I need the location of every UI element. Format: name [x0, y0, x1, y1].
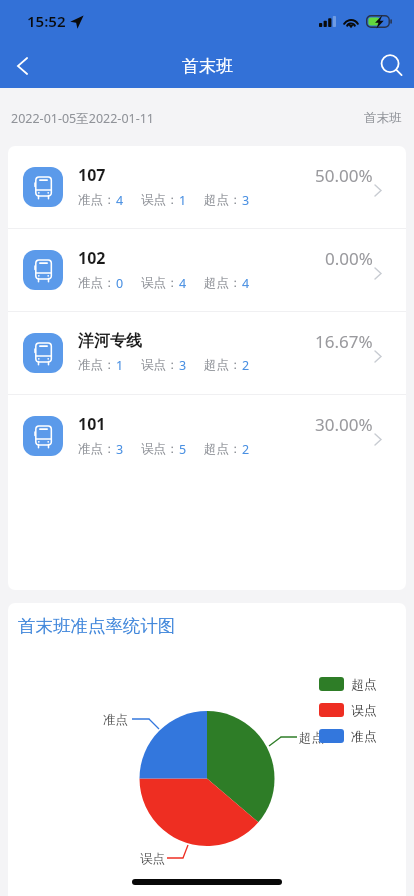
staticText: 4 [242, 275, 250, 292]
staticText: 超点 [299, 730, 324, 746]
staticText: 准点： [78, 192, 116, 208]
staticText: 3 [116, 441, 124, 458]
staticText: 15:52 [27, 11, 66, 31]
staticText: 误点 [351, 702, 377, 718]
staticText: 3 [179, 357, 187, 374]
staticText: 准点： [78, 275, 116, 291]
staticText: 洋河专线 [78, 331, 142, 351]
staticText: 4 [179, 275, 187, 292]
staticText: 2022-01-05至2022-01-11 [11, 110, 155, 127]
staticText: 超点： [204, 192, 242, 208]
staticText: 3 [242, 192, 250, 209]
staticText: 误点： [141, 357, 179, 373]
staticText: 4 [116, 192, 124, 209]
staticText: 首末班 [364, 110, 402, 126]
staticText: 2 [242, 357, 250, 374]
staticText: 误点： [141, 192, 179, 208]
staticText: 107 [78, 164, 106, 186]
button[interactable]: Search [370, 44, 414, 88]
staticText: 误点： [141, 275, 179, 291]
staticText: 超点： [204, 275, 242, 291]
staticText: 1 [116, 357, 124, 374]
staticText: 超点： [204, 357, 242, 373]
staticText: 16.67% [315, 330, 373, 353]
staticText: 5 [179, 441, 187, 458]
staticText: 准点： [78, 357, 116, 373]
staticText: 2 [242, 441, 250, 458]
button[interactable]: 107 [8, 146, 406, 228]
staticText: 首末班 [182, 56, 233, 77]
button[interactable]: Back [0, 44, 46, 88]
button[interactable]: 洋河专线 [8, 312, 406, 394]
staticText: 准点 [103, 712, 128, 728]
button[interactable]: 102 [8, 229, 406, 311]
staticText: 超点 [351, 676, 377, 692]
staticText: 0 [116, 275, 124, 292]
staticText: 准点： [78, 441, 116, 457]
staticText: 准点 [351, 728, 377, 744]
staticText: 误点： [141, 441, 179, 457]
staticText: 50.00% [315, 164, 373, 187]
staticText: 超点： [204, 441, 242, 457]
staticText: 1 [179, 192, 187, 209]
staticText: 102 [78, 247, 106, 269]
staticText: 首末班准点率统计图 [18, 615, 176, 637]
staticText: 30.00% [315, 413, 373, 436]
staticText: 101 [78, 413, 106, 435]
button[interactable]: 101 [8, 395, 406, 477]
staticText: 0.00% [325, 247, 373, 270]
staticText: 误点 [140, 851, 165, 867]
